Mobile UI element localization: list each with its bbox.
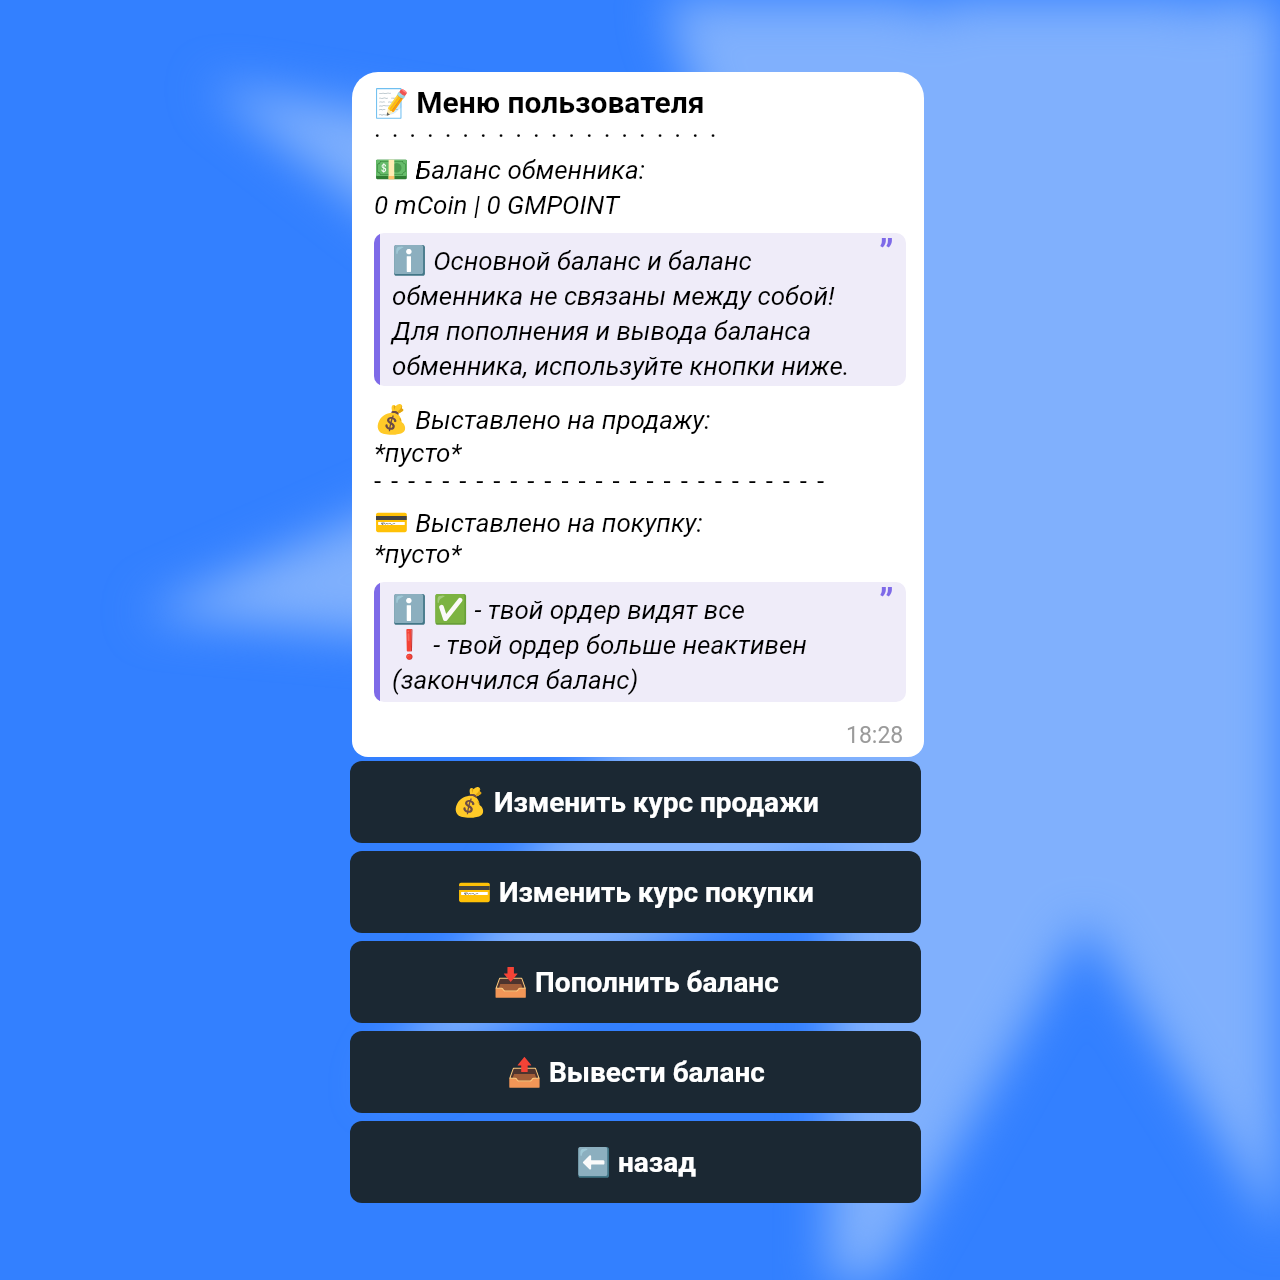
staticText: 📥 Пополнить баланс bbox=[493, 966, 779, 999]
staticText: 💵 Баланс обменника: bbox=[374, 153, 645, 186]
staticText: 18:28 bbox=[846, 722, 904, 749]
staticText: ” bbox=[879, 582, 894, 624]
staticText: ℹ️ Основной баланс и баланс обменника не… bbox=[392, 244, 850, 381]
button[interactable]: 📤 Вывести баланс bbox=[350, 1031, 921, 1113]
button[interactable]: 💳 Изменить курс покупки bbox=[350, 851, 921, 933]
staticText: 💳 Изменить курс покупки bbox=[457, 876, 814, 909]
staticText: ⬅️ назад bbox=[576, 1146, 696, 1179]
staticText: 💰 Изменить курс продажи bbox=[452, 786, 819, 819]
staticText: ” bbox=[879, 233, 894, 275]
staticText: 💰 Выставлено на продажу: bbox=[374, 403, 711, 436]
staticText: 0 mCoin | 0 GMPOINT bbox=[374, 190, 619, 220]
staticText: . . . . . . . . . . . . . . . . . . . . bbox=[374, 113, 719, 143]
button[interactable]: 📥 Пополнить баланс bbox=[350, 941, 921, 1023]
staticText: 📝 Меню пользователя bbox=[374, 85, 705, 120]
staticText: *пусто* bbox=[374, 438, 462, 468]
button[interactable]: 💰 Изменить курс продажи bbox=[350, 761, 921, 843]
staticText: 📤 Вывести баланс bbox=[507, 1056, 765, 1089]
button[interactable]: ⬅️ назад bbox=[350, 1121, 921, 1203]
staticText: 💳 Выставлено на покупку: bbox=[374, 506, 703, 539]
staticText: - - - - - - - - - - - - - - - - - - - - … bbox=[374, 466, 826, 496]
staticText: ℹ️ ✅ - твой ордер видят все ❗ - твой орд… bbox=[392, 593, 807, 695]
staticText: *пусто* bbox=[374, 539, 462, 569]
